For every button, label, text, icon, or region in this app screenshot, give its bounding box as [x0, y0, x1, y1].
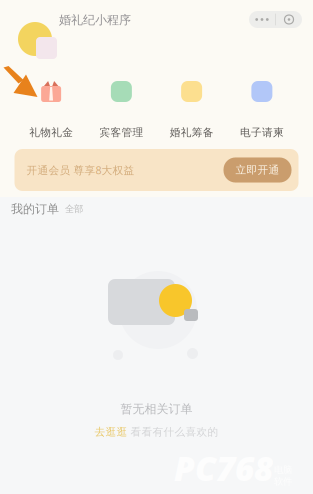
button[interactable]: 婚礼纪小程序 — [59, 8, 131, 32]
button[interactable]: 婚礼筹备 — [156, 81, 227, 139]
staticText: 全部 — [65, 203, 83, 215]
staticText: 宾客管理 — [99, 126, 143, 139]
button[interactable]: More — [249, 11, 275, 28]
button[interactable]: 礼物礼金 — [16, 81, 86, 139]
staticText: PC768 — [174, 446, 273, 490]
button[interactable]: 电子请柬 — [227, 81, 297, 139]
staticText: 暂无相关订单 — [120, 402, 192, 416]
staticText: 看看有什么喜欢的 — [130, 425, 218, 438]
staticText: 立即开通 — [235, 163, 279, 176]
staticText: 婚礼筹备 — [170, 126, 214, 139]
staticText: 电子请柬 — [240, 126, 284, 139]
staticText: 去逛逛 — [94, 425, 127, 438]
staticText: 开通会员 尊享8大权益 — [26, 163, 134, 177]
button[interactable]: Close — [276, 11, 302, 28]
button[interactable]: 去逛逛 — [94, 425, 218, 439]
button[interactable]: 宾客管理 — [86, 81, 156, 139]
button[interactable]: Mini program logo — [0, 0, 56, 56]
staticText: 我的订单 — [11, 202, 59, 216]
staticText: 婚礼纪小程序 — [59, 13, 131, 27]
staticText: 礼物礼金 — [29, 126, 73, 139]
button[interactable]: 开通会员 尊享8大权益 — [14, 149, 298, 191]
